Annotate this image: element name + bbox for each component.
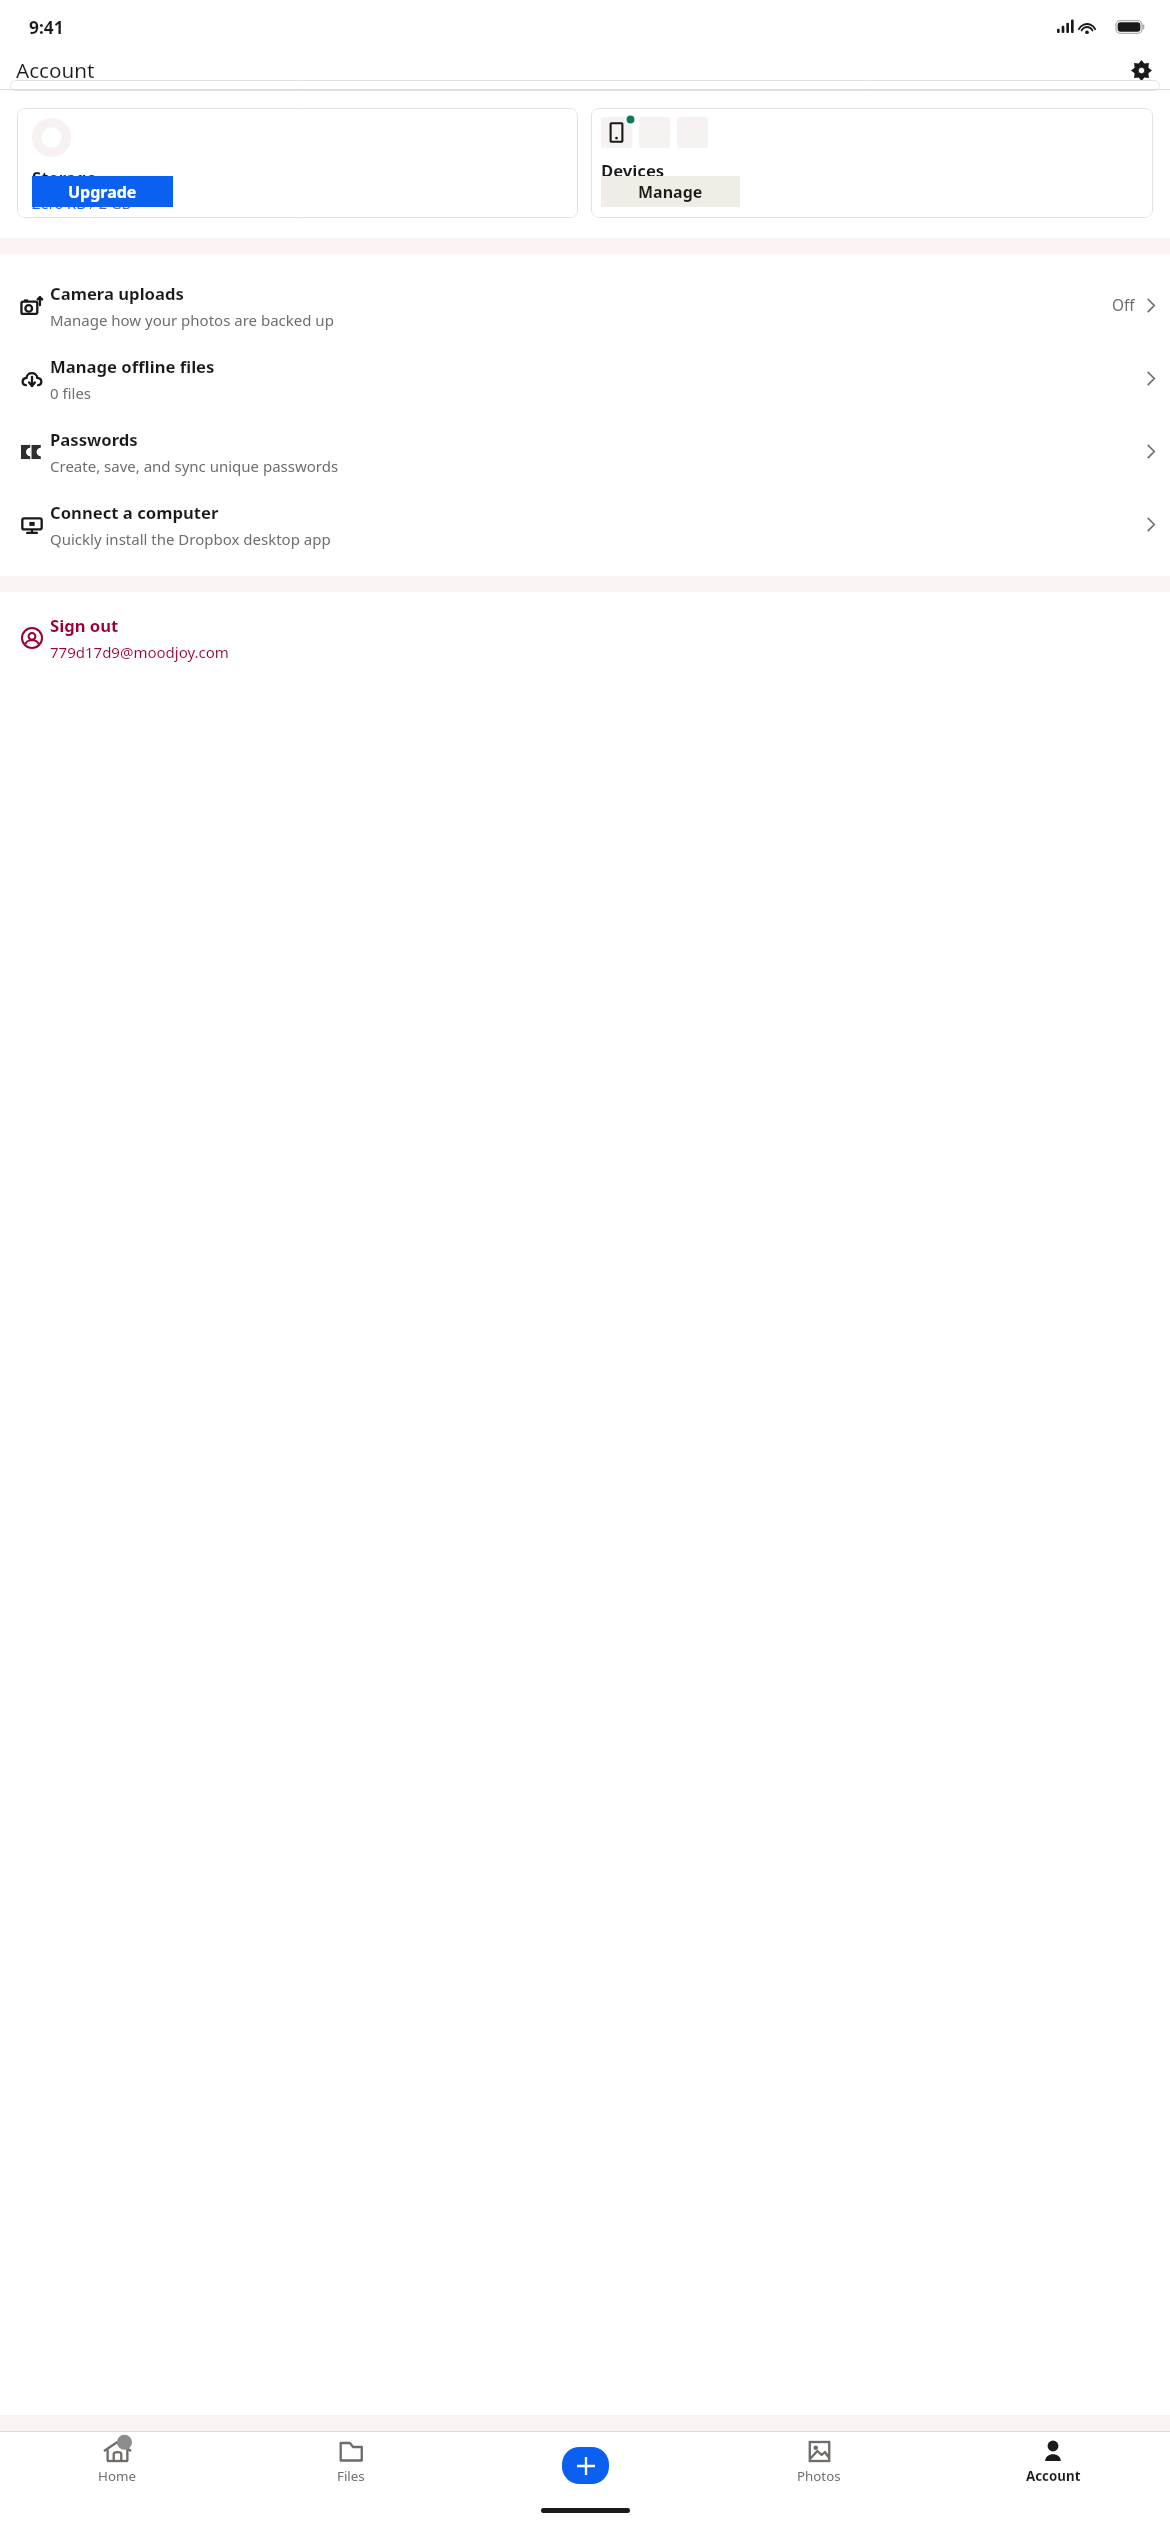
staticText: Home [98,2467,136,2485]
button[interactable]: Files [234,2432,468,2499]
staticText: 779d17d9@moodjoy.com [50,642,229,662]
staticText: Account [16,56,95,84]
button[interactable]: Upgrade [32,176,173,207]
staticText: Account [1026,2467,1081,2485]
staticText: Manage offline files [50,355,215,378]
staticText: Passwords [50,428,138,451]
staticText: Storage [32,166,97,189]
staticText: Camera uploads [50,282,184,305]
button[interactable]: Connect a computer [0,488,1170,561]
button[interactable]: Camera uploads [0,269,1170,342]
button[interactable]: Manage offline files [0,342,1170,415]
button[interactable]: Settings [1125,54,1157,86]
button[interactable]: Passwords [0,415,1170,488]
staticText: Photos [797,2467,841,2485]
staticText: Sign out [50,614,119,637]
button[interactable]: Create [562,2447,609,2484]
staticText: 0 files [50,383,92,403]
button[interactable]: Sign out [0,604,1170,671]
staticText: Zero KB / 2 GB [32,193,132,213]
staticText: Upgrade [68,181,137,203]
staticText: Create, save, and sync unique passwords [50,456,339,476]
staticText: Devices [601,159,665,182]
button[interactable]: Account [936,2432,1170,2499]
button[interactable]: Storage [17,108,578,218]
staticText: Manage [638,181,703,203]
staticText: Quickly install the Dropbox desktop app [50,529,331,549]
button[interactable]: Home [0,2432,234,2499]
staticText: Manage how your photos are backed up [50,310,334,330]
button[interactable]: Devices [591,108,1153,218]
button[interactable]: Manage [601,176,740,207]
staticText: Off [1112,295,1135,316]
staticText: 9:41 [29,15,64,39]
staticText: Files [337,2467,365,2485]
staticText: Connect a computer [50,501,219,524]
button[interactable]: Photos [702,2432,936,2499]
